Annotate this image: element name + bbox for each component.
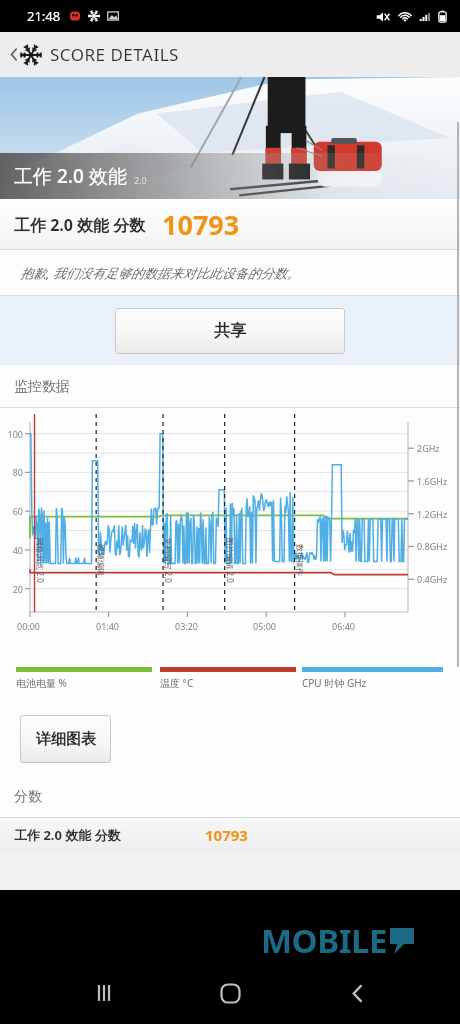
staticText: MOBILE xyxy=(261,918,387,963)
staticText: 21:48 xyxy=(27,7,61,25)
staticText: 100 xyxy=(1,428,23,440)
staticText: 80 xyxy=(1,466,23,478)
staticText: 视频编辑 xyxy=(96,544,106,576)
staticText: 抱歉, 我们没有足够的数据来对比此设备的分数。 xyxy=(20,264,300,282)
staticText: 图片编辑 2.0 xyxy=(224,537,235,583)
staticText: 06:40 xyxy=(332,620,356,632)
staticText: 网格浏览 2.0 xyxy=(34,537,45,583)
staticText: 10793 xyxy=(162,206,240,243)
staticText: 05:00 xyxy=(253,620,277,632)
staticText: 0.8GHz xyxy=(417,540,448,552)
staticText: 工作 2.0 效能 分数 xyxy=(14,826,121,844)
staticText: 电池电量 % xyxy=(16,676,67,690)
staticText: 分数 xyxy=(14,788,42,806)
staticText: 03:20 xyxy=(175,620,199,632)
staticText: 00:00 xyxy=(17,620,41,632)
staticText: 详细图表 xyxy=(36,730,96,749)
staticText: 文档编写 2.0 xyxy=(162,537,173,583)
button[interactable]: Recent apps xyxy=(81,970,127,1016)
staticText: 工作 2.0 效能 分数 xyxy=(14,214,146,236)
staticText: 01:40 xyxy=(96,620,120,632)
staticText: 数据操作 xyxy=(295,544,305,576)
staticText: 1.6GHz xyxy=(417,475,448,487)
button[interactable]: Back xyxy=(0,32,460,77)
staticText: SCORE DETAILS xyxy=(50,43,179,66)
button[interactable]: 工作 2.0 效能 分数 xyxy=(0,818,460,852)
button[interactable]: 共享 xyxy=(115,308,345,354)
staticText: 1.2GHz xyxy=(417,508,448,520)
staticText: 共享 xyxy=(214,321,246,341)
button[interactable]: Home xyxy=(207,970,253,1016)
staticText: 监控数据 xyxy=(14,378,70,396)
staticText: 60 xyxy=(1,505,23,517)
staticText: 20 xyxy=(1,583,23,595)
staticText: CPU 时钟 GHz xyxy=(302,676,367,690)
button[interactable]: 详细图表 xyxy=(20,715,111,763)
other: Back xyxy=(9,46,19,63)
staticText: 2.0 xyxy=(134,174,147,186)
staticText: 2GHz xyxy=(417,442,440,454)
staticText: 0.4GHz xyxy=(417,573,448,585)
staticText: 温度 °C xyxy=(160,676,194,690)
button[interactable]: Back xyxy=(334,970,380,1016)
staticText: 10793 xyxy=(205,825,248,845)
staticText: 工作 2.0 效能 xyxy=(14,163,127,189)
staticText: 40 xyxy=(1,544,23,556)
